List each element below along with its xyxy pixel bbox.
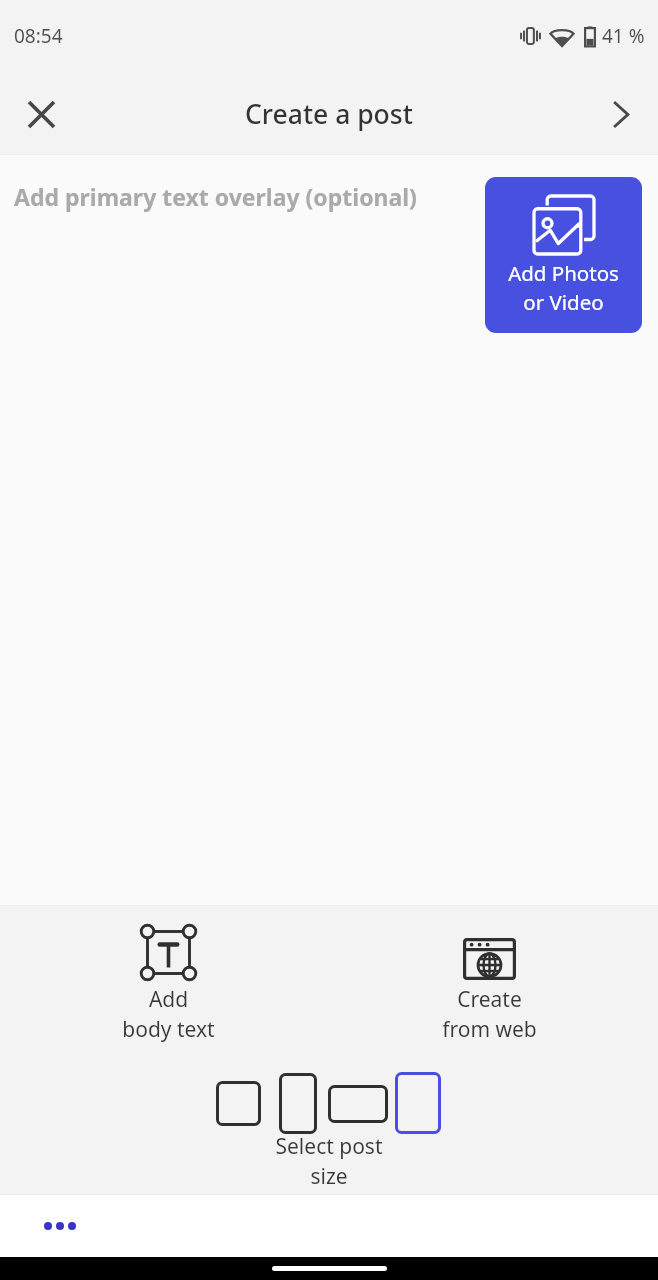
staticText: 41 % [602, 23, 645, 49]
staticText: Select post size [275, 1132, 383, 1190]
button[interactable]: Close [13, 86, 70, 143]
staticText: Create from web [442, 985, 537, 1043]
staticText: Create a post [245, 96, 413, 132]
button[interactable]: Post size option [216, 1081, 261, 1126]
button[interactable]: Create from web [434, 936, 544, 1045]
button[interactable]: Add body text [113, 923, 223, 1045]
staticText: Add Photos or Video [508, 259, 619, 316]
staticText: Add primary text overlay (optional) [14, 181, 417, 212]
staticText: 08:54 [14, 23, 63, 49]
staticText: Add body text [122, 985, 215, 1043]
button[interactable]: Add Photos or Video [485, 177, 642, 333]
button[interactable]: Post size option [328, 1085, 388, 1123]
button[interactable]: More options [44, 1222, 76, 1230]
button[interactable]: Post size option [395, 1072, 441, 1134]
button[interactable]: Post size option [279, 1073, 317, 1134]
button[interactable]: Next [592, 86, 649, 143]
